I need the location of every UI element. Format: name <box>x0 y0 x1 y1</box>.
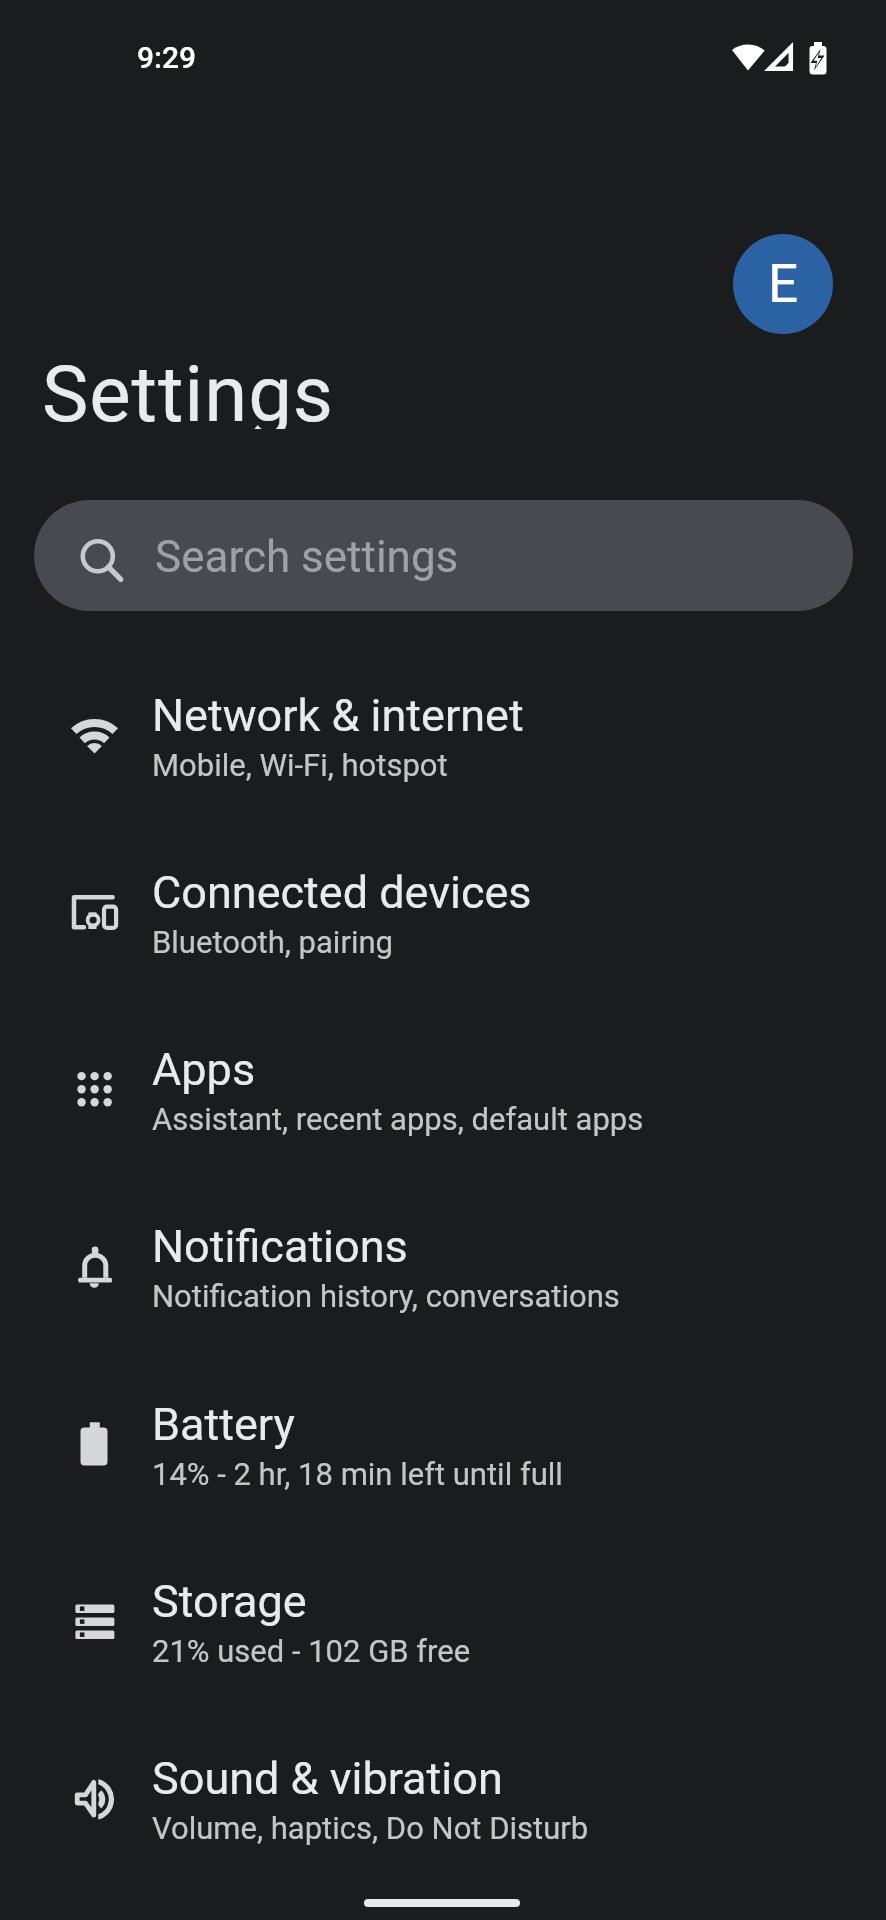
staticText: Storage <box>152 1575 307 1628</box>
button[interactable] <box>34 500 853 611</box>
staticText: Network & internet <box>152 689 524 742</box>
button[interactable]: Storage <box>0 1537 886 1714</box>
button[interactable]: Sound & vibration <box>0 1714 886 1891</box>
button[interactable]: Battery <box>0 1360 886 1537</box>
staticText: Search settings <box>155 531 459 583</box>
staticText: Volume, haptics, Do Not Disturb <box>152 1810 589 1846</box>
staticText: E <box>768 253 799 315</box>
button[interactable]: Network & internet <box>0 651 886 828</box>
staticText: Mobile, Wi-Fi, hotspot <box>152 747 448 783</box>
button[interactable]: Notifications <box>0 1182 886 1359</box>
staticText: Sound & vibration <box>152 1752 503 1805</box>
staticText: 9:29 <box>137 40 197 75</box>
staticText: 14% - 2 hr, 18 min left until full <box>152 1456 563 1492</box>
button[interactable]: Connected devices <box>0 828 886 1005</box>
staticText: 21% used - 102 GB free <box>152 1633 471 1669</box>
staticText: Notification history, conversations <box>152 1278 620 1314</box>
staticText: Bluetooth, pairing <box>152 924 393 960</box>
staticText: Apps <box>152 1043 256 1096</box>
staticText: Connected devices <box>152 866 532 919</box>
staticText: Notifications <box>152 1220 408 1273</box>
button[interactable]: E <box>733 234 833 334</box>
staticText: Assistant, recent apps, default apps <box>152 1101 644 1137</box>
staticText: Settings <box>42 349 335 429</box>
staticText: Battery <box>152 1398 295 1451</box>
button[interactable]: Apps <box>0 1005 886 1182</box>
